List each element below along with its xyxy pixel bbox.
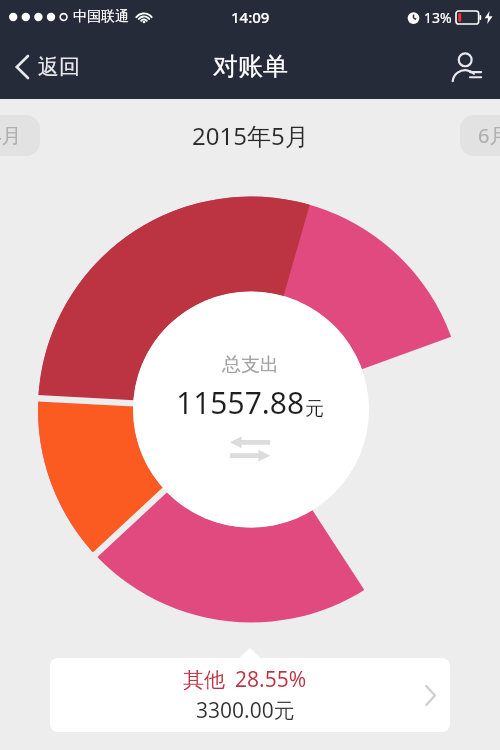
staticText: 返回 xyxy=(38,54,80,80)
staticText: 6月 xyxy=(478,122,500,149)
staticText: 其他 xyxy=(183,667,225,693)
staticText: 4月 xyxy=(0,122,22,149)
staticText: 28.55% xyxy=(235,665,307,694)
button[interactable]: Switch income expense xyxy=(225,432,275,466)
staticText: 14:09 xyxy=(231,7,270,27)
staticText: 3300.00元 xyxy=(196,696,295,725)
staticText: 2015年5月 xyxy=(192,119,309,152)
button[interactable]: 其他 xyxy=(50,658,450,732)
staticText: 元 xyxy=(305,397,324,421)
button[interactable]: 6月 xyxy=(460,115,500,156)
staticText: 13% xyxy=(424,8,452,27)
staticText: 总支出 xyxy=(222,353,279,377)
staticText: 对账单 xyxy=(213,51,288,82)
button[interactable]: 返回 xyxy=(0,34,96,99)
button[interactable]: 4月 xyxy=(0,115,40,156)
staticText: 中国联通 xyxy=(73,8,129,26)
staticText: 11557.88 xyxy=(176,382,305,423)
button[interactable]: Account xyxy=(434,34,500,99)
